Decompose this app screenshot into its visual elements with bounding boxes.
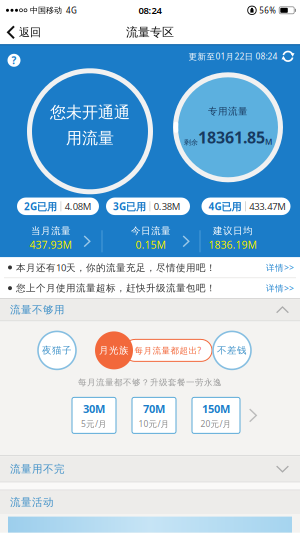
staticText: 437.93M [29, 238, 72, 252]
staticText: 今日流量 [131, 225, 171, 237]
staticText: 30M [83, 401, 105, 416]
button[interactable]: 您上个月使用流量超标，赶快升级流量包吧！ [0, 278, 300, 298]
staticText: 中国移动 [30, 5, 62, 15]
staticText: 当月流量 [31, 225, 71, 237]
button[interactable]: 4G已用 [201, 197, 290, 215]
button[interactable]: 当月流量 [29, 225, 72, 252]
staticText: 433.47M [249, 200, 286, 213]
staticText: 本月还有10天，你的流量充足，尽情使用吧！ [16, 261, 216, 274]
button[interactable]: 不差钱 [213, 331, 251, 369]
button[interactable]: 2G已用 [17, 197, 99, 215]
staticText: 3G已用 [113, 200, 146, 213]
button[interactable]: 30M [72, 397, 116, 433]
staticText: 流量用不完 [10, 462, 65, 475]
staticText: 每月流量都超出? [134, 345, 201, 356]
staticText: 更新至01月22日 08:24 [188, 51, 277, 62]
staticText: 夜猫子 [42, 345, 72, 356]
button[interactable]: 月光族 [95, 331, 133, 369]
staticText: 返回 [19, 25, 41, 39]
staticText: 用流量 [66, 128, 114, 148]
staticText: 建议日均 [213, 225, 253, 237]
staticText: 您上个月使用流量超标，赶快升级流量包吧！ [16, 282, 216, 294]
button[interactable]: 流量活动 [0, 490, 300, 514]
staticText: 4G [66, 5, 77, 16]
button[interactable]: 返回 [0, 25, 41, 39]
staticText: 4G已用 [208, 200, 241, 213]
button[interactable]: 流量活动横幅 [8, 517, 292, 533]
staticText: 150M [202, 401, 230, 416]
staticText: 5元/月 [81, 418, 107, 429]
button[interactable]: 帮助 [7, 54, 20, 67]
staticText: 20元/月 [200, 418, 231, 429]
button[interactable]: 70M [132, 397, 176, 433]
button[interactable]: 3G已用 [106, 197, 190, 215]
staticText: 70M [143, 401, 165, 416]
staticText: 08:24 [138, 4, 161, 17]
button[interactable]: 建议日均 [208, 225, 257, 252]
button[interactable]: 流量用不完 [0, 456, 300, 482]
staticText: 56% [259, 5, 276, 16]
staticText: 2G已用 [24, 200, 57, 213]
staticText: 1836.19M [208, 238, 257, 252]
staticText: 剩余18361.85M [184, 127, 272, 148]
button[interactable]: 夜猫子 [38, 331, 76, 369]
staticText: 10元/月 [138, 418, 169, 429]
button[interactable]: 今日流量 [131, 225, 171, 252]
staticText: 0.38M [154, 200, 181, 213]
staticText: 专用流量 [208, 105, 248, 117]
button[interactable]: 150M [192, 397, 240, 433]
staticText: 您未开通通 [50, 103, 130, 122]
staticText: ? [11, 54, 16, 67]
staticText: 每月流量都不够？升级套餐一劳永逸 [78, 377, 222, 388]
button[interactable]: 刷新 [281, 50, 294, 63]
staticText: 详情>> [266, 262, 294, 273]
staticText: 流量不够用 [10, 303, 65, 316]
button[interactable]: 流量不够用 [0, 299, 300, 321]
staticText: 不差钱 [217, 345, 247, 356]
staticText: 流量专区 [126, 25, 174, 40]
staticText: 0.15M [135, 238, 166, 252]
button[interactable]: 本月还有10天，你的流量充足，尽情使用吧！ [0, 257, 300, 277]
staticText: 月光族 [99, 345, 129, 356]
staticText: 流量活动 [10, 496, 54, 509]
staticText: 详情>> [266, 282, 294, 294]
staticText: 4.08M [65, 200, 92, 213]
